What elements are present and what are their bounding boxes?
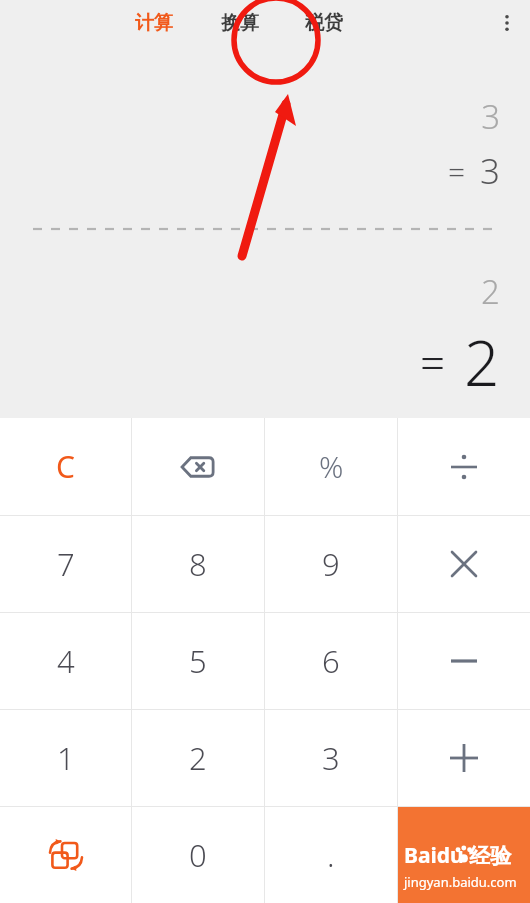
- button[interactable]: Baidu 经验: [398, 807, 530, 903]
- button[interactable]: Backspace: [132, 418, 264, 515]
- button[interactable]: [398, 710, 530, 806]
- staticText: 7: [57, 543, 75, 585]
- button[interactable]: [398, 613, 530, 709]
- staticText: %: [319, 446, 344, 487]
- button[interactable]: 0: [132, 807, 264, 903]
- staticText: jingyan.baidu.com: [404, 873, 517, 891]
- button[interactable]: 5: [132, 613, 264, 709]
- button[interactable]: 4: [0, 613, 131, 709]
- button[interactable]: C: [0, 418, 131, 515]
- staticText: 8: [189, 543, 207, 585]
- staticText: 2: [464, 320, 500, 404]
- button[interactable]: [398, 516, 530, 612]
- button[interactable]: 计算: [133, 5, 175, 41]
- button[interactable]: [398, 418, 530, 515]
- button[interactable]: 1: [0, 710, 131, 806]
- staticText: .: [327, 834, 335, 876]
- staticText: C: [56, 446, 75, 487]
- button[interactable]: 换算: [219, 5, 261, 41]
- staticText: 0: [189, 834, 207, 876]
- button[interactable]: More options: [484, 0, 530, 46]
- button[interactable]: Unit conversion: [0, 807, 131, 903]
- staticText: 税贷: [305, 11, 343, 35]
- staticText: 3: [322, 737, 340, 779]
- button[interactable]: 3: [265, 710, 397, 806]
- staticText: Baidu 经验: [404, 841, 512, 870]
- button[interactable]: 8: [132, 516, 264, 612]
- button[interactable]: .: [265, 807, 397, 903]
- staticText: 5: [189, 640, 207, 682]
- staticText: 换算: [221, 11, 259, 35]
- button[interactable]: 税贷: [303, 5, 345, 41]
- staticText: 9: [322, 543, 340, 585]
- staticText: 3: [481, 94, 500, 139]
- staticText: 3: [480, 147, 500, 195]
- staticText: 6: [322, 640, 340, 682]
- staticText: 2: [481, 269, 500, 314]
- button[interactable]: 7: [0, 516, 131, 612]
- staticText: =: [420, 332, 446, 392]
- button[interactable]: %: [265, 418, 397, 515]
- button[interactable]: 2: [132, 710, 264, 806]
- staticText: =: [448, 151, 466, 192]
- staticText: 4: [57, 640, 75, 682]
- button[interactable]: 6: [265, 613, 397, 709]
- staticText: 计算: [135, 11, 173, 35]
- staticText: 2: [189, 737, 207, 779]
- button[interactable]: 9: [265, 516, 397, 612]
- staticText: 1: [57, 737, 75, 779]
